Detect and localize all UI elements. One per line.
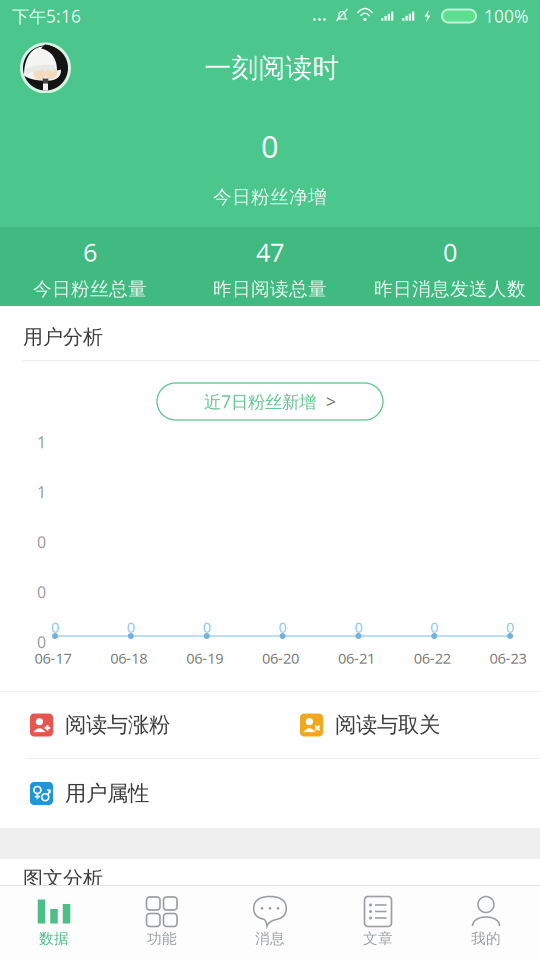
staticText: 06-23 <box>490 648 527 668</box>
staticText: 06-20 <box>262 648 299 668</box>
staticText: 06-22 <box>414 648 451 668</box>
staticText: 06-18 <box>110 648 147 668</box>
staticText: > <box>326 390 336 413</box>
staticText: 今日粉丝净增 <box>213 185 327 208</box>
button[interactable]: 消息 <box>216 888 324 958</box>
staticText: 0 <box>51 617 59 637</box>
staticText: 文章 <box>363 929 393 947</box>
staticText: 1 <box>37 431 46 453</box>
staticText: 图文分析 <box>23 866 103 891</box>
staticText: 0 <box>261 126 279 166</box>
staticText: 消息 <box>255 929 285 947</box>
staticText: 下午5:16 <box>12 4 81 27</box>
staticText: 一刻阅读时 <box>204 52 339 84</box>
staticText: 0 <box>354 617 362 637</box>
staticText: 用户属性 <box>65 780 149 807</box>
staticText: 昨日消息发送人数 <box>374 277 526 300</box>
staticText: 我的 <box>471 929 501 947</box>
staticText: 0 <box>430 617 438 637</box>
staticText: 100% <box>484 4 528 27</box>
staticText: 功能 <box>147 929 177 947</box>
staticText: 47 <box>256 235 284 269</box>
button[interactable]: 我的 <box>432 888 540 958</box>
staticText: 0 <box>37 531 46 553</box>
staticText: 0 <box>443 235 457 269</box>
staticText: 06-21 <box>338 648 375 668</box>
staticText: 昨日阅读总量 <box>213 277 327 300</box>
staticText: 用户分析 <box>23 325 103 349</box>
staticText: 阅读与涨粉 <box>65 712 170 738</box>
staticText: 06-17 <box>34 648 71 668</box>
staticText: 0 <box>37 631 46 653</box>
staticText: 0 <box>278 617 286 637</box>
staticText: 0 <box>203 617 211 637</box>
staticText: 数据 <box>39 929 69 947</box>
button[interactable]: 功能 <box>108 888 216 958</box>
button[interactable]: 文章 <box>324 888 432 958</box>
staticText: 0 <box>127 617 135 637</box>
button[interactable]: 数据 <box>0 888 108 958</box>
button[interactable]: Profile <box>20 37 71 88</box>
staticText: 0 <box>506 617 514 637</box>
staticText: 今日粉丝总量 <box>33 277 147 300</box>
staticText: 1 <box>37 481 46 503</box>
staticText: 06-19 <box>186 648 223 668</box>
staticText: 近7日粉丝新增 <box>204 390 316 413</box>
button[interactable]: 近7日粉丝新增 <box>157 383 383 420</box>
staticText: 6 <box>83 235 97 269</box>
staticText: 0 <box>37 581 46 603</box>
staticText: 阅读与取关 <box>335 712 440 738</box>
